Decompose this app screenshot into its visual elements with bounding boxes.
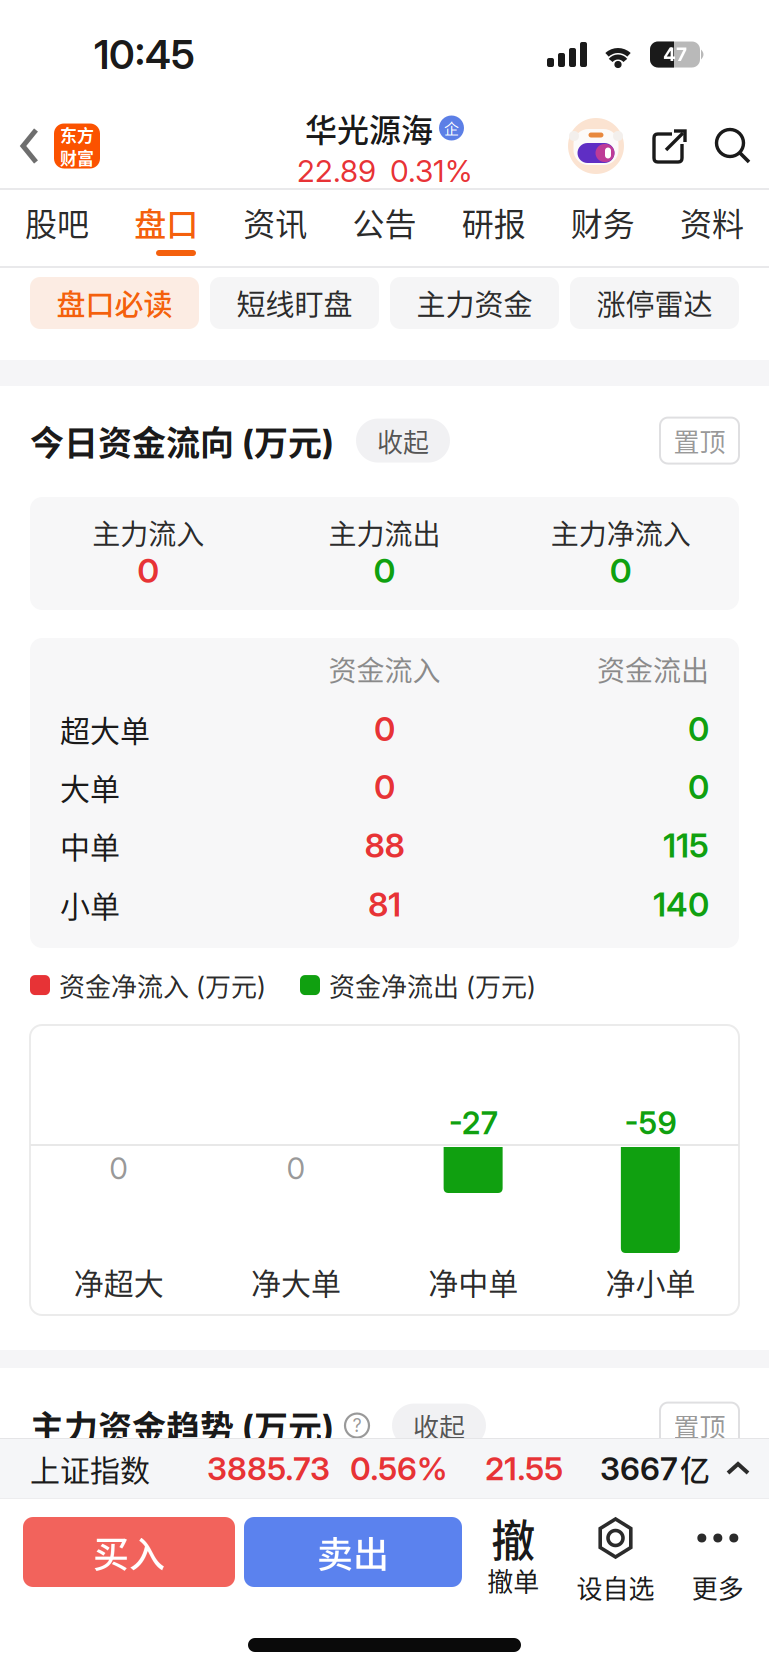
staticText: 净中单 [428, 1257, 518, 1306]
staticText: 资金流出 [597, 646, 709, 692]
button[interactable]: 涨停雷达 [570, 277, 739, 329]
button[interactable]: 盘口必读 [30, 277, 199, 329]
button[interactable]: 更多 [667, 1517, 769, 1608]
staticText: 撤单 [487, 1559, 539, 1601]
staticText: 10:45 [94, 27, 195, 82]
staticText: 收起 [413, 1404, 465, 1447]
button[interactable]: 上证指数 [0, 1438, 769, 1498]
button[interactable]: 买入 [23, 1517, 235, 1587]
button[interactable]: 资料 [680, 196, 744, 248]
staticText: 0.56% [350, 1447, 447, 1490]
button[interactable]: 盘口 [134, 196, 198, 248]
button[interactable]: Search [714, 127, 752, 165]
staticText: ? [352, 1413, 361, 1438]
button[interactable]: 卖出 [244, 1517, 462, 1587]
staticText: 资金流入 [328, 646, 440, 692]
staticText: 资金净流出 (万元) [329, 964, 536, 1006]
staticText: 净超大 [74, 1257, 164, 1306]
staticText: 47 [663, 42, 687, 67]
staticText: 更多 [692, 1566, 744, 1608]
staticText: 收起 [377, 419, 429, 462]
staticText: 0 [286, 1148, 305, 1189]
staticText: 上证指数 [30, 1444, 150, 1493]
staticText: 短线盯盘 [236, 279, 352, 326]
staticText: 涨停雷达 [596, 279, 712, 326]
button[interactable]: 主力资金 [390, 277, 559, 329]
staticText: 3885.73 [207, 1447, 330, 1490]
staticText: 盘口必读 [56, 279, 172, 326]
staticText: 0 [688, 707, 709, 751]
staticText: 资讯 [243, 196, 307, 248]
staticText: 中单 [60, 821, 120, 870]
staticText: 卖出 [317, 1523, 389, 1581]
button[interactable]: AI助手 [568, 118, 624, 174]
button[interactable]: 收起 [356, 419, 450, 463]
button[interactable]: 设自选 [564, 1517, 667, 1608]
button[interactable]: Share [652, 126, 688, 166]
staticText: 华光源海 [305, 102, 433, 154]
staticText: 主力流出 [328, 510, 440, 555]
staticText: 主力资金趋势 (万元) [30, 1398, 334, 1453]
button[interactable]: 研报 [462, 196, 526, 248]
staticText: 超大单 [60, 705, 150, 753]
staticText: 0 [137, 547, 159, 594]
staticText: -27 [449, 1102, 498, 1144]
staticText: 0 [373, 547, 395, 594]
staticText: 财富 [60, 146, 94, 169]
staticText: 主力净流入 [551, 510, 691, 555]
staticText: 资料 [680, 196, 744, 248]
staticText: 股吧 [25, 196, 89, 248]
button[interactable]: 收起 [392, 1404, 486, 1448]
button[interactable]: Back [0, 128, 54, 164]
staticText: 撤 [491, 1502, 535, 1574]
staticText: 0 [374, 707, 395, 751]
button[interactable]: 股吧 [25, 196, 89, 248]
staticText: 主力资金 [416, 279, 532, 326]
staticText: 0 [374, 765, 395, 809]
staticText: 0 [688, 765, 709, 809]
staticText: 0.31% [390, 151, 472, 191]
button[interactable]: 短线盯盘 [210, 277, 379, 329]
button[interactable]: 置顶 [660, 1403, 739, 1449]
staticText: 盘口 [134, 196, 198, 248]
staticText: 公告 [352, 196, 416, 248]
staticText: 21.55 [485, 1447, 563, 1490]
staticText: 小单 [60, 880, 120, 929]
staticText: 3667 [600, 1447, 678, 1490]
button[interactable]: 撤单 [462, 1517, 564, 1601]
staticText: 设自选 [576, 1566, 654, 1608]
button[interactable]: 公告 [352, 196, 416, 248]
button[interactable]: 财务 [571, 196, 635, 248]
staticText: 亿 [680, 1444, 710, 1493]
staticText: 大单 [60, 763, 120, 811]
staticText: 东方 [60, 123, 94, 146]
staticText: 财务 [571, 196, 635, 248]
staticText: 0 [109, 1148, 128, 1189]
staticText: -59 [624, 1102, 676, 1144]
button[interactable]: 资讯 [243, 196, 307, 248]
staticText: 企 [444, 116, 459, 140]
staticText: 主力流入 [92, 510, 204, 555]
staticText: 22.89 [297, 151, 376, 191]
staticText: 资金净流入 (万元) [59, 964, 266, 1006]
button[interactable]: 置顶 [660, 418, 739, 464]
staticText: 0 [610, 547, 632, 594]
staticText: 今日资金流向 (万元) [30, 413, 334, 468]
button[interactable]: 东方财富 [54, 123, 100, 169]
staticText: 88 [364, 823, 404, 868]
staticText: 净大单 [251, 1257, 341, 1306]
staticText: 净小单 [605, 1257, 695, 1306]
staticText: 研报 [462, 196, 526, 248]
staticText: 买入 [93, 1523, 165, 1581]
staticText: 置顶 [673, 419, 725, 462]
staticText: 115 [663, 823, 709, 868]
staticText: 140 [653, 882, 709, 927]
staticText: 81 [368, 882, 401, 927]
staticText: 置顶 [673, 1404, 725, 1447]
